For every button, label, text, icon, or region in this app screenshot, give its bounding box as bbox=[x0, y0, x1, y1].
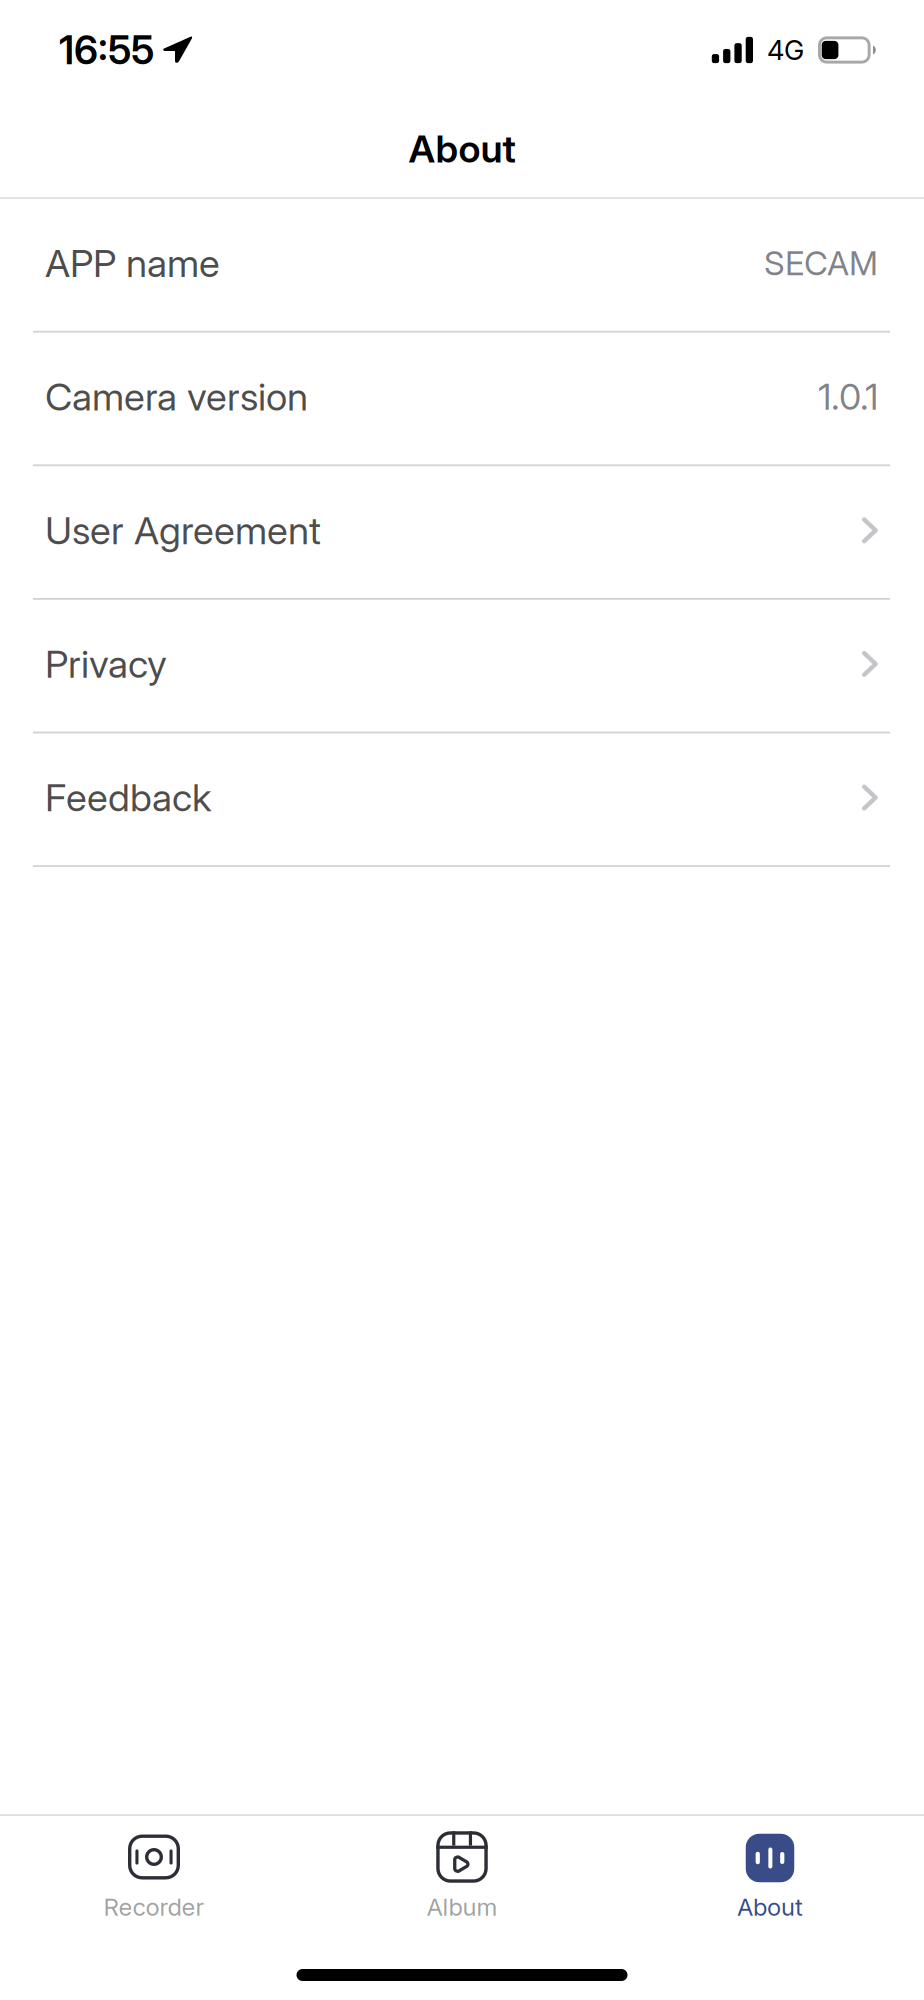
staticText: 4G bbox=[767, 33, 804, 67]
button[interactable]: About bbox=[616, 1816, 924, 2000]
button[interactable]: Recorder bbox=[0, 1816, 308, 2000]
staticText: About bbox=[737, 1892, 803, 1921]
staticText: Recorder bbox=[103, 1892, 204, 1921]
staticText: SECAM bbox=[764, 243, 878, 283]
staticText: Camera version bbox=[45, 374, 308, 420]
button[interactable]: Privacy bbox=[0, 600, 924, 733]
staticText: Feedback bbox=[45, 775, 212, 821]
staticText: 16:55 bbox=[59, 26, 154, 74]
staticText: Privacy bbox=[45, 641, 167, 687]
staticText: About bbox=[408, 126, 515, 172]
staticText: 1.0.1 bbox=[818, 375, 878, 419]
staticText: Album bbox=[426, 1892, 497, 1921]
staticText: APP name bbox=[45, 240, 220, 286]
button[interactable]: User Agreement bbox=[0, 466, 924, 600]
button[interactable]: Album bbox=[308, 1816, 616, 2000]
button[interactable]: Feedback bbox=[0, 733, 924, 867]
staticText: User Agreement bbox=[45, 507, 321, 553]
